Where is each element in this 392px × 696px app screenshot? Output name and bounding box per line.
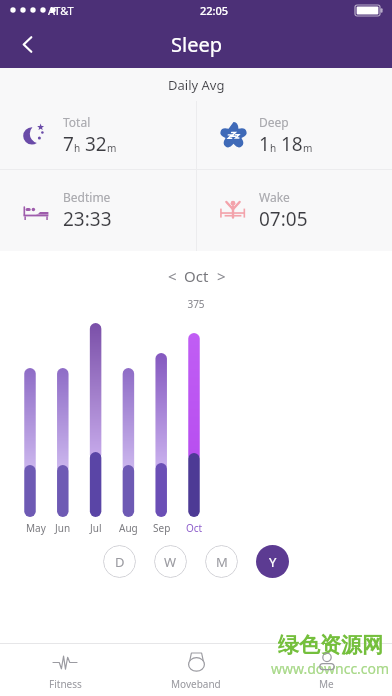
staticText: Aug — [119, 521, 138, 535]
staticText: Moveband — [171, 677, 221, 691]
button[interactable]: Y — [256, 545, 289, 578]
staticText: Jun — [55, 521, 71, 535]
staticText: 绿色资源网 — [278, 632, 383, 658]
staticText: Sep — [153, 521, 171, 535]
button[interactable]: D — [103, 545, 136, 578]
staticText: 18 — [281, 131, 303, 157]
staticText: Daily Avg — [168, 76, 225, 94]
staticText: Deep — [259, 114, 289, 130]
staticText: h — [74, 141, 81, 155]
staticText: Oct — [186, 521, 203, 535]
staticText: 1 — [259, 131, 270, 157]
button[interactable]: Total — [0, 101, 196, 169]
staticText: 7 — [63, 131, 74, 157]
staticText: m — [107, 141, 117, 155]
staticText: Fitness — [49, 677, 82, 691]
staticText: AT&T — [48, 3, 74, 18]
staticText: D — [115, 553, 125, 571]
staticText: Wake — [259, 189, 290, 205]
button[interactable]: Me — [261, 644, 392, 696]
button[interactable]: M — [205, 545, 238, 578]
staticText: Oct — [184, 266, 209, 286]
button[interactable]: W — [154, 545, 187, 578]
staticText: www.downcc.com — [271, 659, 390, 678]
staticText: Me — [319, 677, 334, 691]
staticText: May — [26, 521, 46, 535]
staticText: 23:33 — [63, 206, 112, 232]
staticText: 07:05 — [259, 206, 308, 232]
staticText: Sleep — [171, 31, 222, 58]
button[interactable]: Bedtime — [0, 170, 196, 251]
staticText: < — [168, 266, 177, 286]
button[interactable]: Wake — [196, 170, 392, 251]
staticText: Total — [63, 114, 91, 130]
button[interactable]: Moveband — [130, 644, 261, 696]
button[interactable]: Deep — [196, 101, 392, 169]
staticText: 32 — [85, 131, 107, 157]
button[interactable]: Back — [4, 21, 50, 67]
staticText: 22:05 — [200, 3, 229, 18]
staticText: > — [217, 266, 226, 286]
button[interactable]: Fitness — [0, 644, 130, 696]
staticText: Bedtime — [63, 189, 111, 205]
staticText: M — [216, 553, 228, 571]
staticText: W — [164, 553, 177, 571]
button[interactable]: Next month — [209, 264, 233, 288]
staticText: 375 — [0, 297, 392, 311]
staticText: Y — [269, 553, 277, 571]
staticText: Jul — [90, 521, 102, 535]
staticText: h — [270, 141, 277, 155]
button[interactable]: Previous month — [160, 264, 184, 288]
staticText: m — [303, 141, 313, 155]
